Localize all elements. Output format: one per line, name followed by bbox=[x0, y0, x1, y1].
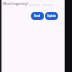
button[interactable]: Send bbox=[31, 12, 44, 20]
button[interactable]: Update bbox=[45, 12, 58, 20]
staticText: Update bbox=[47, 14, 57, 18]
staticText: What's happening? bbox=[3, 2, 29, 6]
staticText: Send bbox=[34, 14, 41, 18]
